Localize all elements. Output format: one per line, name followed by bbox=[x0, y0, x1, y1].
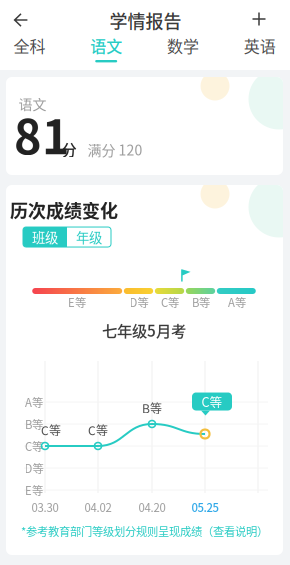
button[interactable]: *参考教育部门等级划分规则呈现成绩（查看说明） bbox=[19, 524, 269, 538]
staticText: C等 bbox=[201, 392, 222, 411]
staticText: 05.25 bbox=[191, 499, 218, 515]
staticText: A等 bbox=[25, 394, 43, 410]
staticText: C等 bbox=[25, 438, 43, 454]
staticText: 满分 120 bbox=[87, 139, 142, 160]
staticText: C等 bbox=[41, 421, 61, 439]
staticText: 七年级5月考 bbox=[102, 319, 186, 341]
button[interactable]: 数学 bbox=[147, 36, 219, 70]
staticText: 班级 bbox=[32, 227, 58, 247]
staticText: 历次成绩变化 bbox=[10, 197, 118, 223]
staticText: 04.20 bbox=[138, 499, 165, 515]
staticText: 学情报告 bbox=[109, 7, 181, 34]
button[interactable]: Add bbox=[237, 0, 281, 38]
staticText: D等 bbox=[24, 460, 43, 476]
staticText: C等 bbox=[88, 421, 108, 439]
staticText: E等 bbox=[25, 482, 43, 498]
button[interactable]: 班级 bbox=[23, 227, 67, 247]
staticText: 81 bbox=[14, 100, 70, 168]
button[interactable]: 英语 bbox=[224, 36, 290, 70]
staticText: 分 bbox=[62, 138, 77, 160]
staticText: *参考教育部门等级划分规则呈现成绩（查看说明） bbox=[21, 523, 268, 539]
staticText: 语文 bbox=[18, 93, 46, 114]
staticText: 全科 bbox=[13, 34, 45, 57]
button[interactable]: 年级 bbox=[67, 227, 111, 247]
staticText: B等 bbox=[192, 294, 210, 310]
staticText: 数学 bbox=[167, 34, 199, 57]
staticText: 03.30 bbox=[31, 499, 58, 515]
staticText: 语文 bbox=[90, 34, 122, 57]
button[interactable]: 语文 bbox=[70, 36, 142, 70]
staticText: 英语 bbox=[244, 34, 276, 57]
staticText: B等 bbox=[25, 416, 43, 432]
staticText: C等 bbox=[161, 294, 179, 310]
staticText: 年级 bbox=[76, 227, 102, 247]
staticText: 04.02 bbox=[84, 499, 111, 515]
button[interactable]: 全科 bbox=[0, 36, 65, 70]
button[interactable]: Back bbox=[0, 1, 43, 39]
staticText: D等 bbox=[129, 294, 148, 310]
staticText: A等 bbox=[228, 294, 246, 310]
staticText: E等 bbox=[68, 294, 86, 310]
staticText: B等 bbox=[142, 399, 162, 417]
